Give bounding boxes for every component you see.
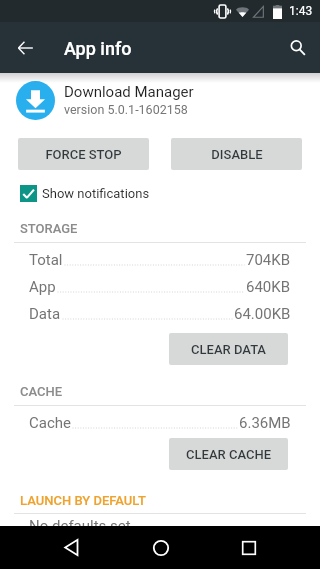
button[interactable]: Navigate up	[7, 29, 44, 66]
staticText: STORAGE	[20, 221, 78, 236]
button[interactable]: Total	[0, 246, 320, 273]
staticText: 704KB	[246, 251, 291, 269]
staticText: Show notifications	[42, 186, 150, 201]
staticText: 64.00KB	[234, 305, 291, 323]
staticText: version 5.0.1-1602158	[64, 102, 188, 117]
button[interactable]: Back	[50, 526, 93, 569]
staticText: Download Manager	[64, 83, 194, 101]
button[interactable]: Home	[139, 526, 182, 569]
button[interactable]: FORCE STOP	[18, 138, 149, 170]
staticText: Total	[29, 251, 63, 269]
button[interactable]: CLEAR CACHE	[169, 438, 288, 470]
staticText: 640KB	[246, 278, 291, 296]
staticText: 1:43	[289, 4, 313, 18]
staticText: App info	[64, 38, 132, 59]
staticText: CACHE	[20, 384, 63, 399]
staticText: FORCE STOP	[45, 147, 122, 162]
staticText: Data	[29, 305, 61, 323]
staticText: No defaults set	[29, 517, 131, 535]
button[interactable]: Show notifications	[20, 181, 150, 206]
button[interactable]: Recent apps	[227, 526, 270, 569]
button[interactable]: DISABLE	[171, 138, 302, 170]
button[interactable]: CLEAR DATA	[169, 333, 288, 365]
button[interactable]: Cache	[0, 409, 320, 436]
button[interactable]: App	[0, 273, 320, 300]
button[interactable]: Search	[279, 29, 316, 66]
staticText: CLEAR CACHE	[186, 447, 271, 462]
staticText: CLEAR DATA	[191, 342, 266, 357]
staticText: App	[29, 278, 56, 296]
staticText: 6.36MB	[239, 414, 291, 432]
button[interactable]: Data	[0, 300, 320, 327]
button[interactable]: No defaults set	[0, 512, 320, 539]
staticText: Cache	[29, 414, 71, 432]
staticText: DISABLE	[211, 147, 263, 162]
staticText: LAUNCH BY DEFAULT	[20, 493, 146, 508]
